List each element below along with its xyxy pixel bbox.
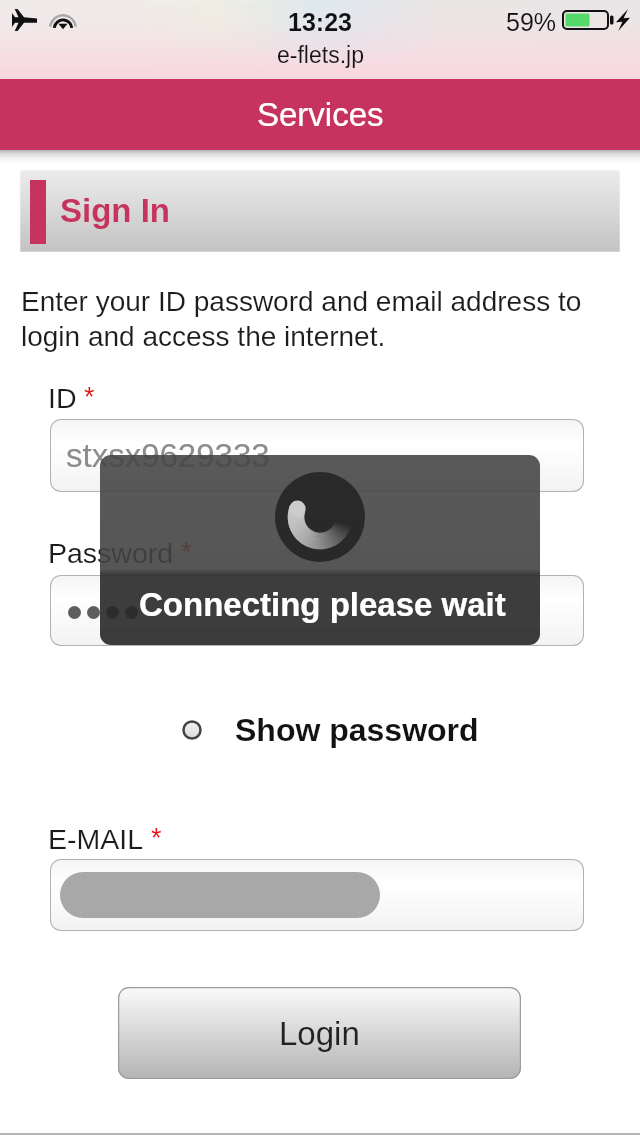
staticText: Show password: [235, 712, 479, 748]
button[interactable]: [50, 859, 584, 931]
staticText: e-flets.jp: [277, 42, 364, 68]
button[interactable]: Toggle show password: [182, 711, 479, 749]
staticText: 13:23: [288, 8, 352, 36]
other: Toggle show password: [182, 720, 202, 740]
button[interactable]: Services: [0, 79, 640, 150]
staticText: *: [84, 382, 95, 412]
button[interactable]: stxsx9629333: [50, 419, 584, 492]
staticText: ID: [48, 382, 77, 414]
staticText: E-MAIL: [48, 823, 144, 855]
staticText: Sign In: [60, 192, 170, 229]
staticText: Connecting please wait: [139, 586, 506, 623]
staticText: *: [181, 537, 192, 567]
staticText: Enter your ID password and email address…: [21, 286, 591, 352]
staticText: Login: [279, 1015, 360, 1052]
other: Wi-Fi: [50, 10, 76, 29]
button[interactable]: [50, 575, 584, 646]
staticText: *: [151, 823, 162, 853]
staticText: 59%: [506, 8, 557, 36]
staticText: Services: [257, 96, 384, 133]
button[interactable]: Login: [118, 987, 521, 1079]
staticText: Password: [48, 537, 174, 569]
other: Airplane mode: [12, 9, 37, 31]
staticText: stxsx9629333: [66, 437, 270, 474]
